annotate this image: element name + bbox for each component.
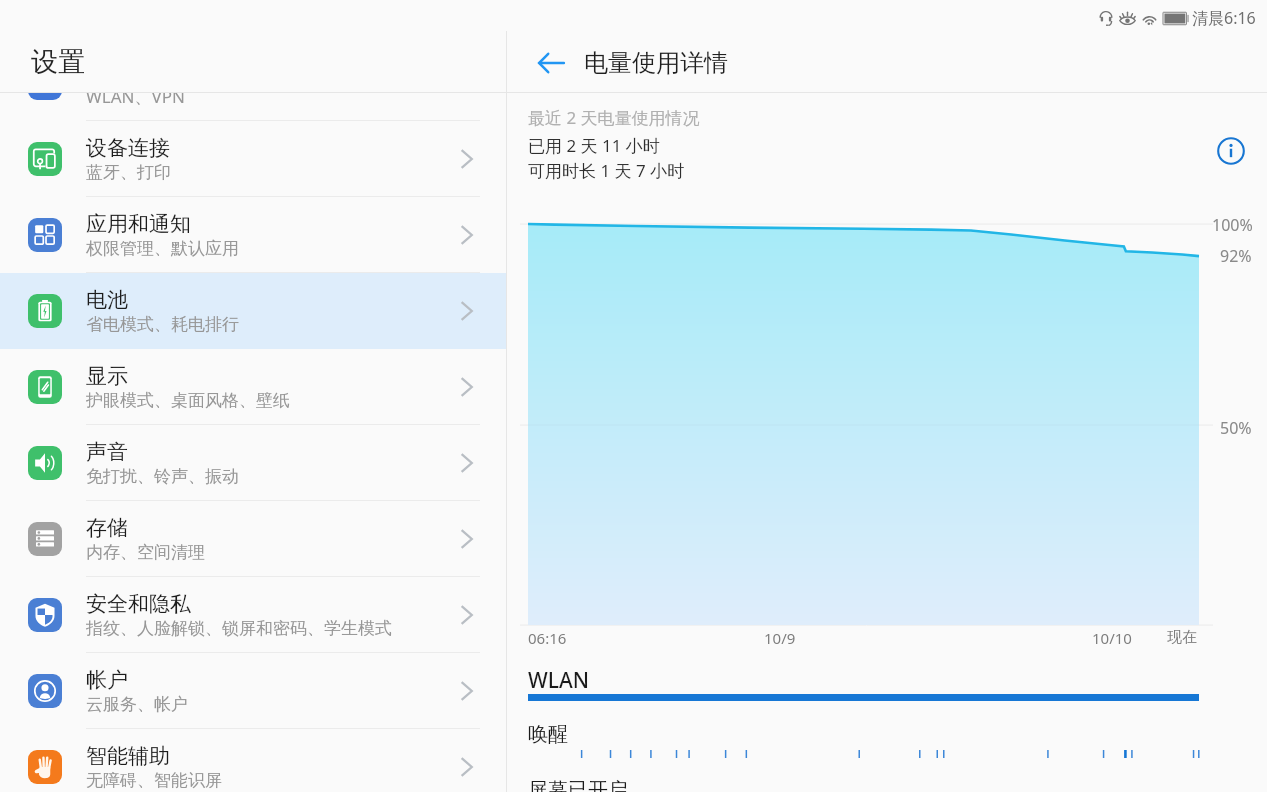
button[interactable]: 电池 [0,273,506,349]
staticText: WLAN、VPN [86,85,185,108]
staticText: 智能辅助 [86,743,170,769]
staticText: 帐户 [86,667,128,693]
button[interactable]: Info [1209,129,1253,173]
staticText: 内存、空间清理 [86,542,205,563]
staticText: 现在 [1167,628,1197,647]
button[interactable]: 安全和隐私 [0,577,506,653]
staticText: 蓝牙、打印 [86,162,171,183]
staticText: 设备连接 [86,135,170,161]
button[interactable]: 存储 [0,501,506,577]
staticText: 无障碍、智能识屏 [86,770,222,791]
staticText: 清晨6:16 [1192,7,1256,29]
staticText: 安全和隐私 [86,591,191,617]
button[interactable]: 智能辅助 [0,729,506,792]
staticText: 唤醒 [528,722,568,747]
staticText: 可用时长 1 天 7 小时 [528,159,685,182]
staticText: 100% [1212,214,1253,236]
staticText: 声音 [86,439,128,465]
staticText: 已用 2 天 11 小时 [528,134,660,157]
staticText: WLAN [528,666,590,695]
staticText: 指纹、人脸解锁、锁屏和密码、学生模式 [86,618,392,639]
button[interactable]: 网络 [0,45,506,121]
staticText: 设置 [31,45,85,79]
staticText: 免打扰、铃声、振动 [86,466,239,487]
button[interactable]: Back [529,41,573,85]
staticText: 应用和通知 [86,211,191,237]
staticText: 护眼模式、桌面风格、壁纸 [86,390,290,411]
button[interactable]: 应用和通知 [0,197,506,273]
button[interactable]: 帐户 [0,653,506,729]
button[interactable]: 设备连接 [0,121,506,197]
staticText: 10/10 [1092,628,1132,648]
staticText: 电量使用详情 [584,48,728,78]
staticText: 92% [1220,245,1252,267]
staticText: 最近 2 天电量使用情况 [528,106,700,129]
staticText: 权限管理、默认应用 [86,238,239,259]
staticText: 10/9 [764,628,796,648]
button[interactable]: 声音 [0,425,506,501]
button[interactable]: 显示 [0,349,506,425]
staticText: 云服务、帐户 [86,694,188,715]
staticText: 省电模式、耗电排行 [86,314,239,335]
staticText: 50% [1220,417,1252,439]
staticText: 电池 [86,287,128,313]
staticText: 显示 [86,363,128,389]
staticText: 屏幕已开启 [528,778,628,792]
staticText: 06:16 [528,628,567,648]
staticText: 存储 [86,515,128,541]
